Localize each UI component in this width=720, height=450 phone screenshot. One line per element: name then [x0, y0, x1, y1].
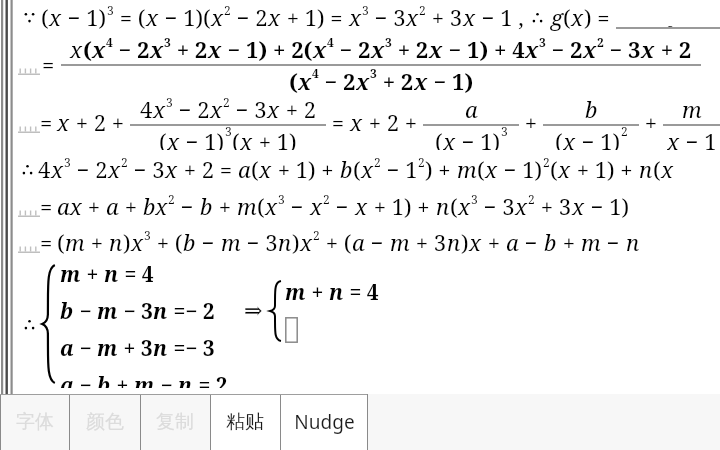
staticText: x [558, 154, 571, 184]
staticText: x [463, 2, 476, 32]
staticText: + [111, 371, 134, 388]
staticText: 2 [374, 154, 381, 170]
staticText: + [82, 191, 106, 221]
staticText: − 2 [231, 2, 268, 32]
staticText: x [641, 34, 655, 64]
staticText: x [563, 126, 576, 150]
staticText: m [134, 371, 155, 388]
staticText: − [175, 191, 200, 221]
staticText: x [208, 34, 222, 64]
staticText: ( [653, 154, 661, 184]
staticText: 3 [144, 227, 151, 243]
staticText: + [482, 227, 506, 257]
staticText: a [352, 227, 365, 257]
staticText: − 1) [180, 126, 225, 150]
staticText: ( [257, 191, 265, 221]
staticText: ( [251, 154, 259, 184]
staticText: + 2 [392, 34, 429, 64]
staticText: x [525, 34, 539, 64]
staticText: − [519, 227, 544, 257]
staticText: n [109, 227, 123, 257]
staticText: ( [477, 154, 485, 184]
staticText: x [92, 34, 106, 64]
staticText: − [74, 297, 97, 326]
staticText: ( [450, 191, 458, 221]
staticText: 3 [385, 34, 392, 50]
button[interactable]: 复制 [140, 394, 210, 450]
staticText: 3 [64, 154, 71, 170]
button[interactable]: 字体 [0, 394, 69, 450]
staticText: 3 [164, 34, 171, 50]
staticText: x [356, 66, 370, 94]
staticText: 4 [140, 94, 153, 124]
staticText: n [447, 227, 461, 257]
staticText: ( [159, 126, 167, 150]
staticText: 2 [418, 154, 425, 170]
staticText: ( [83, 34, 92, 64]
staticText: x [313, 34, 327, 64]
staticText: x [268, 2, 281, 32]
button[interactable]: Nudge [280, 394, 368, 450]
staticText: n [153, 297, 168, 326]
staticText: − 1)( [159, 2, 211, 32]
staticText: ( [555, 126, 563, 150]
staticText: 3 [225, 123, 232, 139]
staticText: m [682, 94, 702, 124]
staticText: a [106, 191, 119, 221]
staticText: 3 [166, 94, 173, 110]
staticText: 2 [597, 34, 604, 50]
staticText: x [429, 34, 443, 64]
staticText: =− 2 [168, 297, 215, 326]
staticText: ) = [584, 2, 616, 32]
staticText: x [240, 126, 253, 150]
staticText: x [349, 2, 362, 32]
staticText: ) [123, 227, 131, 257]
staticText: 4 [327, 34, 334, 50]
staticText: + 2 = [178, 154, 238, 184]
staticText: + 1) + [272, 154, 340, 184]
staticText: 字体 [16, 410, 54, 434]
staticText: + 3 [118, 334, 153, 363]
staticText: m [65, 227, 85, 257]
staticText: − 3 [118, 297, 153, 326]
staticText: − 3 [241, 227, 278, 257]
button[interactable]: 粘贴 [210, 394, 280, 450]
staticText: + [85, 227, 109, 257]
staticText: − 2 [71, 154, 108, 184]
staticText: + 3 [410, 227, 447, 257]
staticText: = [42, 49, 55, 79]
staticText: 3 [501, 123, 508, 139]
staticText: n [178, 371, 193, 388]
staticText: − 2 [173, 94, 210, 124]
staticText: ( [563, 2, 571, 32]
staticText: 4 [106, 34, 113, 50]
staticText: x [355, 191, 368, 221]
staticText: x [167, 126, 180, 150]
staticText: + [639, 107, 663, 137]
staticText: 2 [121, 154, 128, 170]
staticText: = ( [114, 2, 146, 32]
staticText: + 2 [377, 66, 414, 94]
staticText: a [238, 154, 251, 184]
staticText: m [97, 297, 118, 326]
staticText: x [458, 191, 471, 221]
staticText: b [97, 371, 111, 388]
staticText: 3 [362, 2, 369, 18]
staticText: Nudge [294, 409, 355, 435]
staticText: a [465, 94, 478, 124]
staticText: x [350, 107, 363, 137]
staticText: x [300, 227, 313, 257]
staticText: a [506, 227, 519, 257]
staticText: x [572, 191, 585, 221]
staticText: b [60, 297, 74, 326]
button[interactable]: 颜色 [69, 394, 140, 450]
staticText: 2 [223, 94, 230, 110]
staticText: m [60, 260, 81, 289]
staticText: x [571, 2, 584, 32]
staticText: − 3 [128, 154, 165, 184]
staticText: 粘贴 [226, 410, 264, 434]
staticText: 2 [419, 2, 426, 18]
